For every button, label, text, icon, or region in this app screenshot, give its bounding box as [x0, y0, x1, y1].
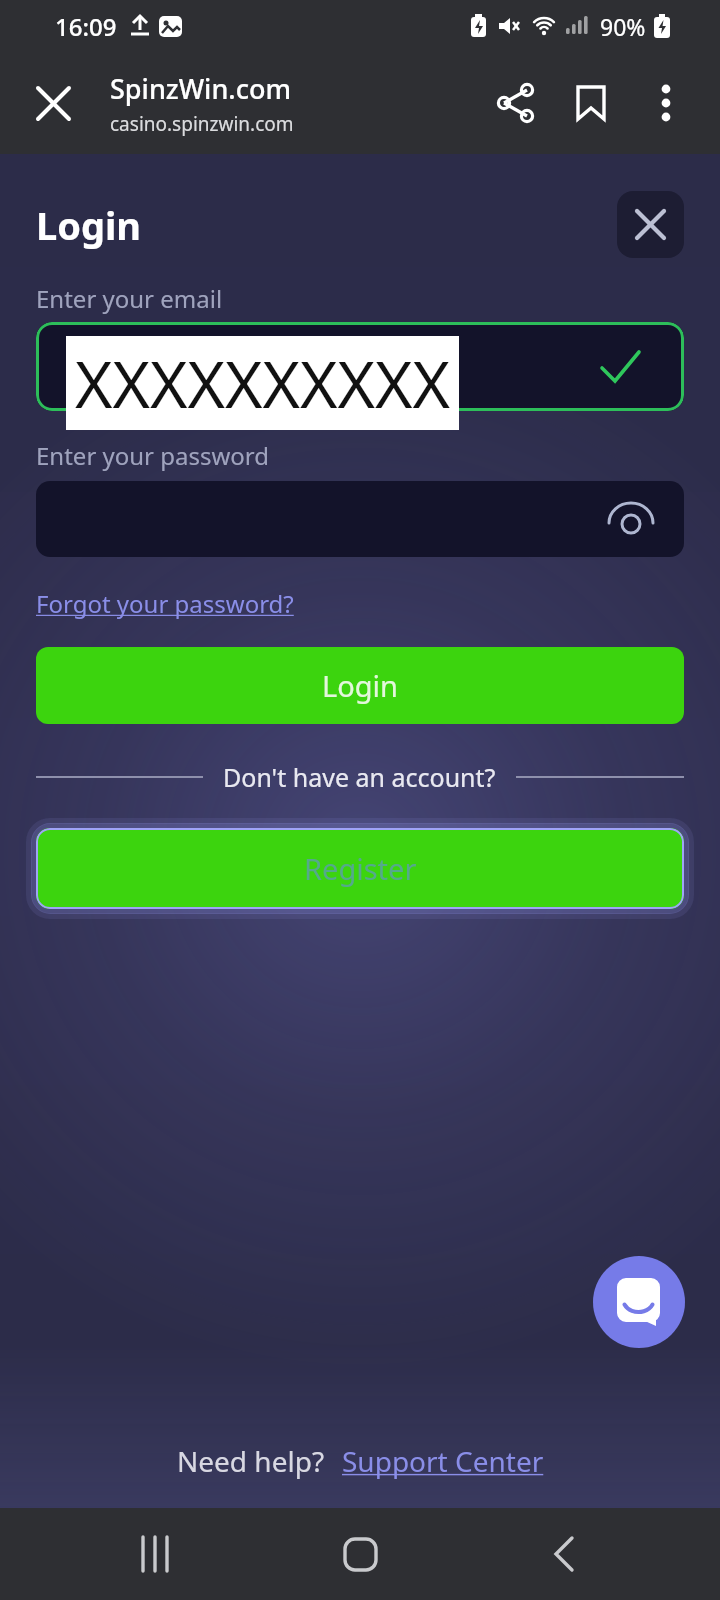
- button[interactable]: [644, 81, 688, 125]
- staticText: Register: [304, 849, 417, 888]
- staticText: SpinzWin.com: [110, 70, 291, 107]
- button[interactable]: Support Center: [342, 1442, 544, 1480]
- staticText: 16:09: [55, 10, 117, 43]
- staticText: Enter your email: [36, 282, 223, 315]
- button[interactable]: [120, 1518, 192, 1590]
- button[interactable]: [324, 1518, 396, 1590]
- staticText: XXXXXXXXXX: [75, 340, 451, 427]
- button[interactable]: [28, 78, 78, 128]
- button[interactable]: [36, 481, 684, 557]
- button[interactable]: Register: [36, 828, 684, 909]
- staticText: casino.spinzwin.com: [110, 111, 294, 137]
- button[interactable]: [593, 1256, 685, 1348]
- button[interactable]: [494, 81, 538, 125]
- button[interactable]: [617, 191, 684, 258]
- button[interactable]: [528, 1518, 600, 1590]
- staticText: Enter your password: [36, 439, 270, 472]
- button[interactable]: [569, 81, 613, 125]
- staticText: Login: [322, 666, 398, 705]
- button[interactable]: Login: [36, 647, 684, 724]
- button[interactable]: Forgot your password?: [36, 587, 294, 620]
- staticText: Need help?: [177, 1442, 325, 1480]
- button[interactable]: [36, 322, 684, 411]
- staticText: Don't have an account?: [223, 760, 496, 794]
- staticText: 90%: [600, 11, 646, 42]
- staticText: Login: [36, 199, 142, 251]
